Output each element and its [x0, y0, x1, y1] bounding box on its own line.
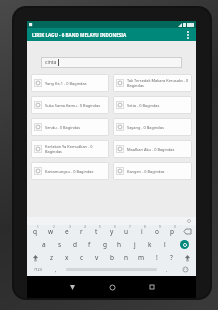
button[interactable]: b: [104, 251, 119, 264]
button[interactable]: Kerlakan Ya Kemudkan - 0 Bagindas: [31, 140, 109, 158]
button[interactable]: Home: [101, 276, 123, 298]
button[interactable]: h: [112, 238, 127, 251]
staticText: r: [80, 227, 83, 236]
button[interactable]: s: [52, 238, 67, 251]
staticText: s: [58, 240, 62, 249]
staticText: y: [110, 227, 114, 236]
staticText: w: [48, 227, 54, 236]
button[interactable]: .: [160, 264, 174, 275]
button[interactable]: Tak Tersedak Makara Kerusaks - 0 Baginda…: [113, 74, 192, 92]
button[interactable]: Yang Ke-1 - 0 Bagindas: [31, 74, 109, 92]
button[interactable]: a: [36, 238, 52, 251]
staticText: i: [141, 227, 143, 236]
button[interactable]: 3: [59, 225, 74, 238]
button[interactable]: More options: [182, 29, 193, 40]
button[interactable]: 7: [119, 225, 134, 238]
staticText: 2: [53, 225, 55, 229]
staticText: g: [103, 240, 107, 249]
button[interactable]: Space: [63, 264, 160, 275]
staticText: Sayang - 0 Bagindas: [127, 125, 164, 130]
staticText: ?123: [34, 267, 42, 272]
button[interactable]: Recents: [141, 276, 163, 298]
staticText: e: [65, 227, 69, 236]
staticText: Setia - 0 Bagindas: [127, 103, 160, 108]
staticText: 0: [174, 225, 176, 229]
staticText: h: [117, 240, 122, 249]
button[interactable]: 2: [43, 225, 59, 238]
button[interactable]: Kartamungsu - 0 Bagindas: [31, 162, 109, 180]
button[interactable]: ,: [49, 264, 63, 275]
button[interactable]: g: [97, 238, 112, 251]
button[interactable]: 0: [164, 225, 179, 238]
button[interactable]: Search: [172, 238, 196, 251]
staticText: Sendu - 0 Bagindas: [45, 125, 80, 130]
staticText: 3: [69, 225, 71, 229]
staticText: Suka Sama Kamu - 0 Bagindas: [45, 103, 101, 108]
staticText: cinta: [45, 59, 57, 66]
staticText: 7: [129, 225, 131, 229]
button[interactable]: Sendu - 0 Bagindas: [31, 118, 109, 136]
button[interactable]: n: [119, 251, 134, 264]
staticText: p: [170, 227, 174, 236]
button[interactable]: Shift: [179, 251, 196, 264]
staticText: o: [155, 227, 159, 236]
button[interactable]: j: [127, 238, 142, 251]
staticText: ?: [170, 253, 173, 262]
button[interactable]: Setia - 0 Bagindas: [113, 96, 192, 114]
staticText: LIRIK LAGU - 6 BAND MELAYU INDONESIA: [32, 32, 127, 38]
button[interactable]: 1: [27, 225, 43, 238]
staticText: t: [95, 227, 98, 236]
button[interactable]: x: [59, 251, 74, 264]
button[interactable]: Back: [61, 276, 83, 298]
staticText: v: [95, 253, 99, 262]
staticText: l: [164, 240, 166, 249]
staticText: k: [148, 240, 152, 249]
button[interactable]: l: [157, 238, 172, 251]
staticText: n: [124, 253, 129, 262]
staticText: 6: [114, 225, 116, 229]
staticText: f: [88, 240, 91, 249]
button[interactable]: m: [134, 251, 149, 264]
button[interactable]: Backspace: [179, 225, 196, 238]
button[interactable]: Maafkan Aku - 0 Bagindas: [113, 140, 192, 158]
button[interactable]: d: [67, 238, 82, 251]
button[interactable]: f: [82, 238, 97, 251]
button[interactable]: 4: [74, 225, 89, 238]
staticText: !: [156, 253, 158, 262]
button[interactable]: cinta: [41, 57, 182, 68]
staticText: 1: [37, 225, 39, 229]
button[interactable]: k: [142, 238, 157, 251]
button[interactable]: 8: [134, 225, 149, 238]
staticText: q: [33, 227, 37, 236]
staticText: .: [166, 266, 168, 273]
button[interactable]: !: [149, 251, 164, 264]
staticText: Tak Tersedak Makara Kerusaks - 0 Baginda…: [127, 78, 189, 88]
staticText: b: [110, 253, 114, 262]
button[interactable]: 9: [149, 225, 164, 238]
button[interactable]: Emoji: [174, 264, 196, 275]
button[interactable]: ?: [164, 251, 179, 264]
staticText: j: [134, 240, 136, 249]
button[interactable]: c: [74, 251, 89, 264]
button[interactable]: v: [89, 251, 104, 264]
staticText: ,: [55, 266, 57, 273]
staticText: 4: [84, 225, 86, 229]
staticText: c: [80, 253, 84, 262]
button[interactable]: z: [44, 251, 59, 264]
button[interactable]: ?123: [27, 264, 49, 275]
button[interactable]: Shift: [27, 251, 44, 264]
button[interactable]: Sayang - 0 Bagindas: [113, 118, 192, 136]
staticText: Yang Ke-1 - 0 Bagindas: [45, 81, 87, 86]
staticText: d: [73, 240, 77, 249]
staticText: 9: [159, 225, 161, 229]
button[interactable]: 6: [104, 225, 119, 238]
staticText: Kangen - 0 Bagindas: [127, 169, 165, 174]
button[interactable]: Kangen - 0 Bagindas: [113, 162, 192, 180]
staticText: a: [42, 240, 46, 249]
staticText: 8: [144, 225, 146, 229]
staticText: x: [65, 253, 69, 262]
button[interactable]: Suka Sama Kamu - 0 Bagindas: [31, 96, 109, 114]
staticText: 5: [99, 225, 101, 229]
button[interactable]: 5: [89, 225, 104, 238]
staticText: Maafkan Aku - 0 Bagindas: [127, 147, 175, 152]
